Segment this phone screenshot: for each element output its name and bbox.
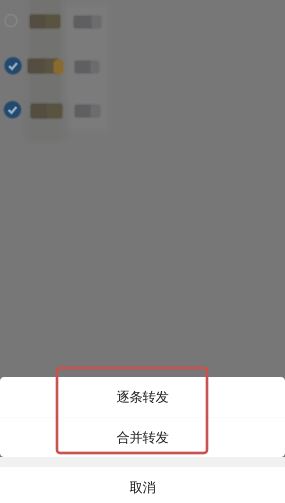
button[interactable]: 取消 [0, 467, 285, 503]
staticText: 合并转发 [116, 429, 168, 446]
staticText: 取消 [129, 479, 155, 496]
button[interactable]: 合并转发 [0, 418, 285, 457]
staticText: 逐条转发 [116, 389, 168, 405]
button[interactable]: 逐条转发 [0, 377, 285, 417]
